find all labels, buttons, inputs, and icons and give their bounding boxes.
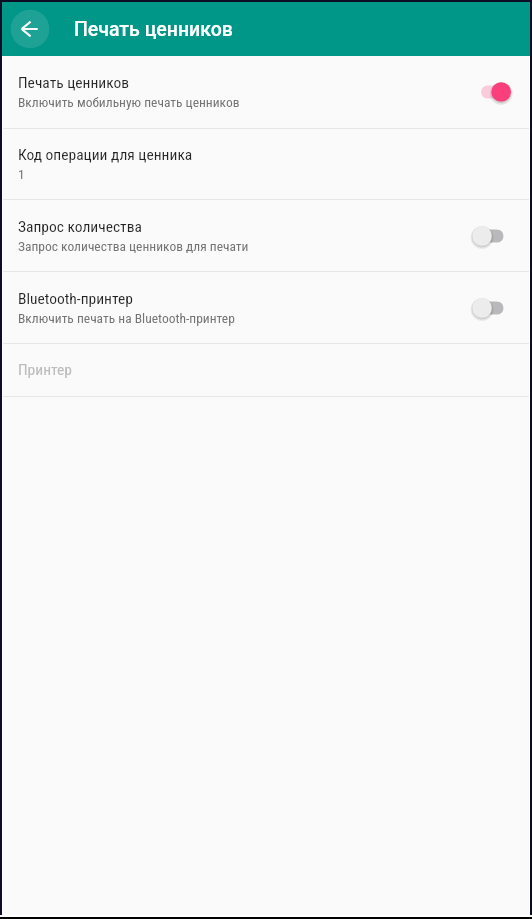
staticText: Запрос количества xyxy=(18,218,142,236)
button[interactable]: Switch on xyxy=(468,68,516,116)
staticText: Код операции для ценника xyxy=(18,146,193,164)
staticText: Включить печать на Bluetooth-принтер xyxy=(18,310,235,326)
staticText: Печать ценников xyxy=(74,18,233,41)
staticText: Принтер xyxy=(18,361,72,379)
button[interactable]: Печать ценников xyxy=(3,56,529,128)
staticText: Bluetooth-принтер xyxy=(18,290,133,308)
button[interactable]: Код операции для ценника xyxy=(3,129,529,199)
button[interactable]: Принтер xyxy=(3,344,529,396)
button[interactable]: Запрос количества xyxy=(3,200,529,271)
staticText: Запрос количества ценников для печати xyxy=(18,238,249,254)
staticText: 1 xyxy=(18,166,25,182)
staticText: Печать ценников xyxy=(18,74,130,92)
staticText: Включить мобильную печать ценников xyxy=(18,94,240,110)
button[interactable]: Back xyxy=(10,9,50,49)
button[interactable]: Switch off xyxy=(468,284,516,332)
button[interactable]: Switch off xyxy=(468,212,516,260)
button[interactable]: Bluetooth-принтер xyxy=(3,272,529,343)
